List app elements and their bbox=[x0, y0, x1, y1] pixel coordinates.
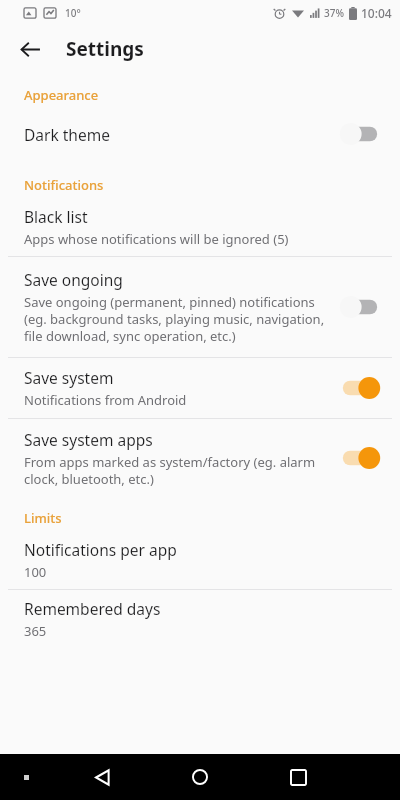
staticText: 100 bbox=[24, 563, 47, 581]
staticText: Save ongoing (permanent, pinned) notific… bbox=[24, 293, 326, 345]
staticText: Notifications bbox=[24, 176, 104, 194]
button[interactable]: Black list bbox=[0, 198, 400, 256]
button[interactable]: Notifications per app bbox=[0, 531, 400, 589]
staticText: 365 bbox=[24, 622, 47, 640]
staticText: Save system apps bbox=[24, 429, 153, 450]
staticText: Appearance bbox=[24, 86, 99, 104]
button[interactable]: Save ongoing bbox=[0, 257, 400, 357]
button[interactable]: Menu bbox=[8, 759, 44, 795]
staticText: From apps marked as system/factory (eg. … bbox=[24, 453, 326, 488]
staticText: 37% bbox=[324, 6, 344, 20]
button[interactable]: Save system apps bbox=[0, 419, 400, 497]
staticText: Black list bbox=[24, 206, 88, 227]
button[interactable]: Dark theme bbox=[0, 108, 400, 160]
staticText: Remembered days bbox=[24, 598, 161, 619]
button[interactable]: Recents bbox=[278, 757, 318, 797]
staticText: Limits bbox=[24, 509, 62, 527]
staticText: Notifications from Android bbox=[24, 391, 187, 409]
staticText: Notifications per app bbox=[24, 539, 177, 560]
staticText: 10° bbox=[65, 6, 81, 20]
staticText: Settings bbox=[66, 36, 144, 62]
staticText: Dark theme bbox=[24, 124, 110, 145]
staticText: Save system bbox=[24, 367, 114, 388]
button[interactable]: Save system bbox=[0, 358, 400, 418]
button[interactable]: Home bbox=[180, 757, 220, 797]
staticText: Save ongoing bbox=[24, 269, 123, 290]
staticText: 10:04 bbox=[361, 5, 392, 21]
button[interactable]: Back bbox=[82, 757, 122, 797]
staticText: Apps whose notifications will be ignored… bbox=[24, 230, 289, 248]
button[interactable]: Back bbox=[10, 29, 50, 69]
button[interactable]: Remembered days bbox=[0, 590, 400, 648]
